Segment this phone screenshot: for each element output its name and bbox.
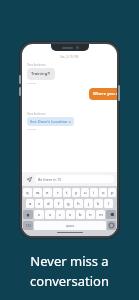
staticText: z (38, 212, 40, 218)
button[interactable]: x (45, 210, 55, 219)
staticText: conversation (30, 272, 109, 290)
button[interactable]: Send location (25, 175, 33, 183)
staticText: w (36, 190, 40, 196)
button[interactable]: v (66, 210, 75, 219)
button[interactable]: t (63, 188, 71, 197)
staticText: f (58, 201, 60, 207)
button[interactable]: i (90, 188, 98, 197)
button[interactable]: Backspace (106, 210, 116, 219)
staticText: 2:04 PM (27, 81, 36, 84)
staticText: d (47, 201, 50, 207)
staticText: Never miss a (30, 252, 109, 270)
button[interactable]: Emoji (107, 221, 116, 230)
staticText: v (69, 212, 72, 218)
staticText: c (59, 212, 62, 218)
button[interactable]: q (23, 188, 32, 197)
staticText: a (29, 201, 32, 207)
staticText: space (66, 224, 75, 228)
staticText: Be there in 15 (38, 177, 62, 182)
button[interactable]: y (72, 188, 80, 197)
button[interactable]: p (108, 188, 116, 197)
staticText: b (79, 212, 82, 218)
button[interactable]: r (53, 188, 62, 197)
staticText: s (38, 201, 41, 207)
staticText: k (97, 201, 100, 207)
button[interactable]: w (33, 188, 42, 197)
staticText: Dave Anderson (27, 63, 46, 67)
staticText: u (84, 190, 87, 196)
button[interactable]: Be there in 15 (35, 175, 114, 183)
staticText: t (66, 190, 68, 196)
staticText: i (93, 190, 95, 196)
button[interactable]: k (94, 199, 103, 208)
button[interactable]: s (35, 199, 43, 208)
button[interactable]: 123 (23, 221, 33, 230)
staticText: Sat, 2:15 PM (60, 55, 79, 59)
staticText: o (102, 190, 105, 196)
button[interactable]: a (26, 199, 34, 208)
staticText: p (111, 190, 114, 196)
button[interactable]: j (84, 199, 93, 208)
staticText: j (88, 201, 90, 207)
staticText: 123 (26, 224, 31, 228)
button[interactable]: b (76, 210, 85, 219)
staticText: e (46, 190, 49, 196)
button[interactable]: See Dave's Location » (27, 117, 74, 126)
button[interactable]: c (56, 210, 65, 219)
button[interactable]: h (74, 199, 83, 208)
button[interactable]: n (86, 210, 95, 219)
button[interactable]: l (104, 199, 113, 208)
button[interactable]: m (96, 210, 105, 219)
staticText: h (77, 201, 80, 207)
button[interactable]: Training?! (27, 68, 55, 80)
staticText: r (57, 190, 59, 196)
button[interactable]: d (44, 199, 53, 208)
button[interactable]: space (34, 221, 106, 230)
button[interactable]: e (43, 188, 52, 197)
staticText: Dave Anderson (27, 112, 46, 116)
staticText: q (26, 190, 29, 196)
staticText: Where you at? (93, 91, 117, 97)
button[interactable]: Where you at? (89, 88, 117, 100)
staticText: 2:09 PM (27, 127, 36, 130)
staticText: l (108, 201, 110, 207)
button[interactable]: f (54, 199, 63, 208)
button[interactable]: u (81, 188, 89, 197)
staticText: y (75, 190, 78, 196)
button[interactable]: Shift (23, 210, 33, 219)
staticText: x (49, 212, 52, 218)
staticText: g (67, 201, 70, 207)
button[interactable]: g (64, 199, 73, 208)
staticText: See Dave's Location » (30, 119, 71, 124)
staticText: Training?! (31, 71, 51, 77)
button[interactable]: z (34, 210, 44, 219)
staticText: m (99, 212, 103, 218)
button[interactable]: o (99, 188, 107, 197)
staticText: n (89, 212, 92, 218)
